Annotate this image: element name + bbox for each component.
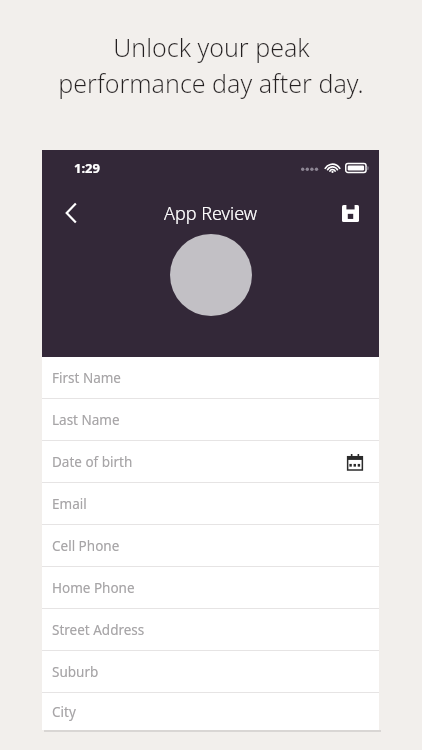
staticText: Home Phone [52, 579, 135, 597]
staticText: Cell Phone [52, 537, 120, 555]
staticText: Suburb [52, 663, 99, 681]
staticText: Email [52, 495, 87, 513]
button[interactable]: City [42, 693, 379, 730]
staticText: 1:29 [74, 159, 100, 177]
staticText: Last Name [52, 411, 120, 429]
button[interactable]: Home Phone [42, 567, 379, 608]
button[interactable]: Pick date [342, 449, 368, 475]
button[interactable]: Street Address [42, 609, 379, 650]
staticText: First Name [52, 369, 121, 387]
button[interactable]: Save [330, 193, 370, 233]
button[interactable]: Cell Phone [42, 525, 379, 566]
button[interactable]: First Name [42, 357, 379, 398]
staticText: Date of birth [52, 453, 133, 471]
staticText: performance day after day. [58, 66, 364, 100]
button[interactable]: Suburb [42, 651, 379, 692]
staticText: App Review [164, 201, 257, 226]
button[interactable]: Profile photo [170, 234, 252, 316]
button[interactable]: Email [42, 483, 379, 524]
staticText: City [52, 703, 76, 721]
button[interactable]: Back [50, 192, 92, 234]
button[interactable]: Last Name [42, 399, 379, 440]
button[interactable]: Date of birth [42, 441, 379, 482]
staticText: Street Address [52, 621, 145, 639]
staticText: Unlock your peak [113, 30, 310, 64]
